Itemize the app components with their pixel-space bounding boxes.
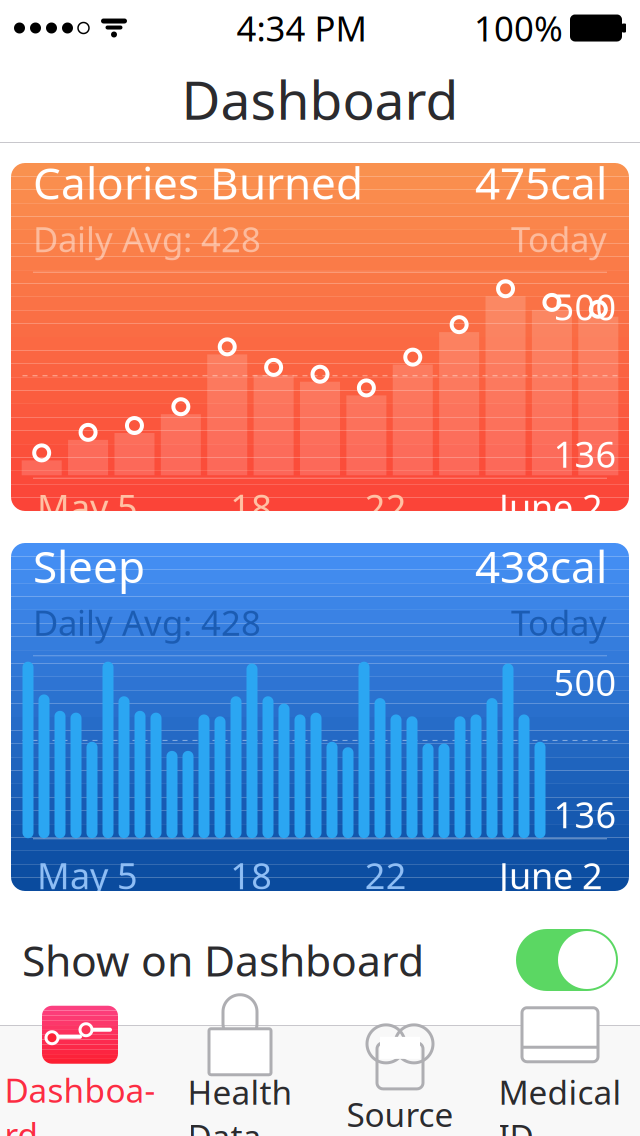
staticText: Daily Avg: 428 [33, 216, 261, 262]
staticText: 4:34 PM [236, 5, 366, 51]
staticText: Source [346, 1092, 453, 1136]
staticText: 500 [553, 283, 616, 330]
staticText: Calories Burned [33, 153, 363, 212]
button[interactable]: Source [320, 1026, 480, 1136]
staticText: May 5 [37, 851, 138, 899]
staticText: Dashboard [181, 64, 458, 134]
staticText: Today [511, 599, 607, 645]
button[interactable]: Health Data [160, 1026, 320, 1136]
button[interactable]: Show on Dashboard [0, 905, 640, 1015]
button[interactable]: Calories Burned [11, 163, 629, 511]
staticText: Today [511, 216, 607, 262]
staticText: 500 [553, 658, 616, 706]
staticText: Medical ID [498, 1070, 621, 1136]
staticText: 22 [365, 483, 407, 531]
staticText: 18 [230, 483, 272, 531]
staticText: 475cal [475, 153, 607, 212]
staticText: 100% [474, 5, 563, 51]
button[interactable]: Dashboard [0, 1026, 160, 1136]
staticText: Daily Avg: 428 [33, 599, 261, 645]
staticText: June 2 [499, 851, 603, 899]
button[interactable]: Medical ID [480, 1026, 640, 1136]
staticText: June 2 [499, 483, 603, 531]
staticText: Dashboard [4, 1068, 155, 1136]
staticText: 438cal [475, 537, 607, 595]
staticText: 136 [553, 430, 616, 478]
staticText: Health Data [187, 1070, 292, 1136]
staticText: Show on Dashboard [22, 932, 424, 988]
staticText: 18 [230, 851, 272, 899]
staticText: 136 [553, 790, 616, 838]
staticText: 22 [365, 851, 407, 899]
staticText: Sleep [33, 537, 145, 595]
button[interactable]: Sleep [11, 543, 629, 891]
staticText: May 5 [37, 483, 138, 531]
